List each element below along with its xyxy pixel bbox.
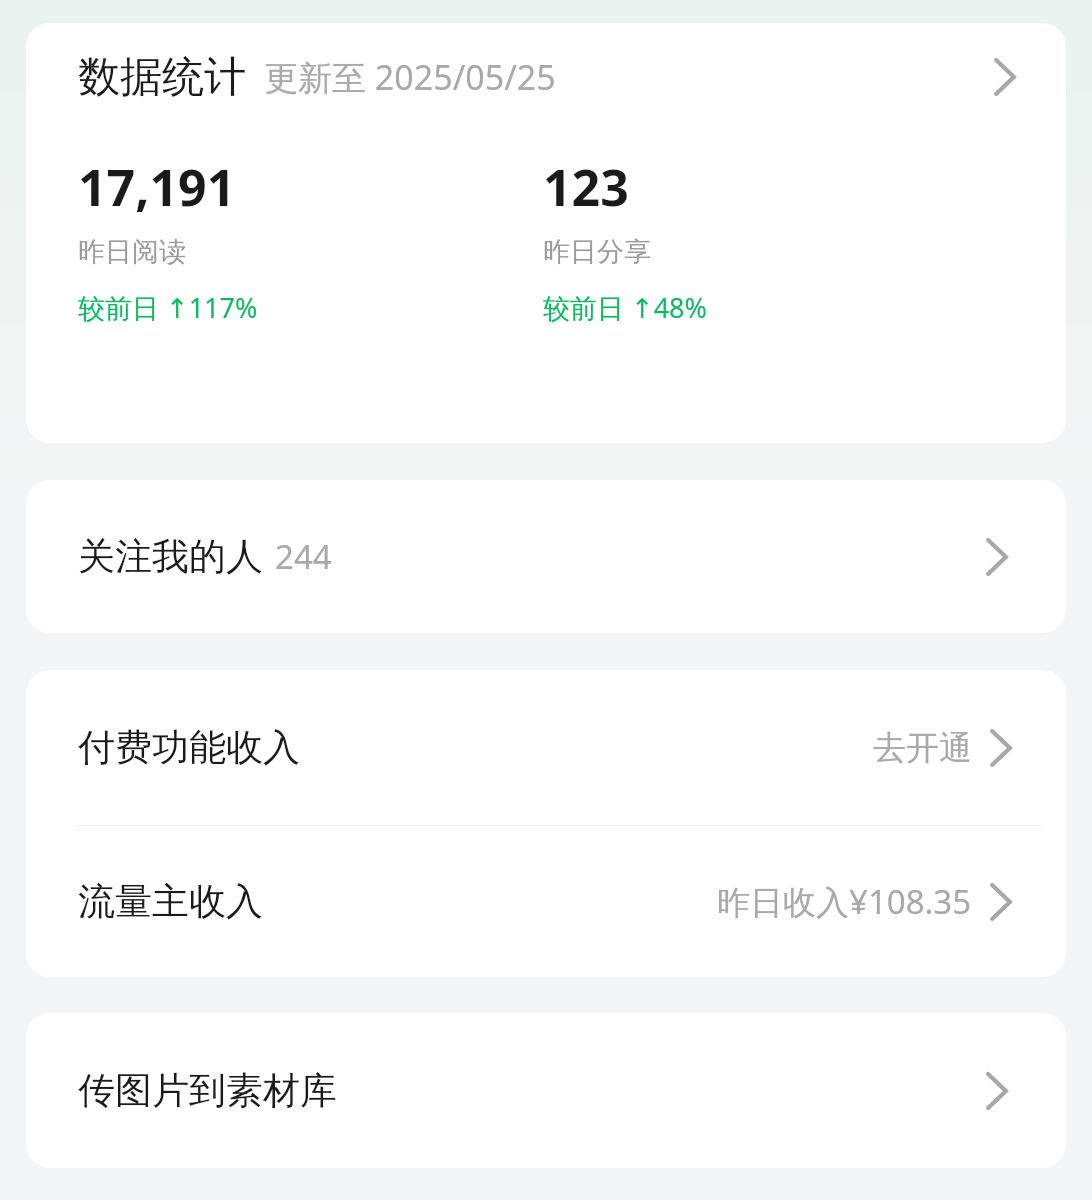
- staticText: 关注我的人: [78, 533, 263, 580]
- button[interactable]: 关注我的人: [26, 480, 1066, 633]
- staticText: 昨日收入¥108.35: [717, 879, 972, 924]
- staticText: 传图片到素材库: [78, 1067, 337, 1114]
- staticText: 昨日阅读: [78, 235, 186, 269]
- staticText: 较前日 ↑48%: [543, 289, 707, 326]
- staticText: 去开通: [873, 727, 972, 769]
- staticText: 123: [543, 153, 629, 221]
- staticText: 流量主收入: [78, 878, 263, 925]
- staticText: 17,191: [78, 153, 236, 221]
- staticText: 昨日分享: [543, 235, 651, 269]
- staticText: 数据统计: [78, 51, 246, 104]
- staticText: 更新至 2025/05/25: [264, 54, 556, 100]
- button[interactable]: 付费功能收入: [26, 670, 1066, 825]
- button[interactable]: 传图片到素材库: [26, 1013, 1066, 1168]
- staticText: 244: [275, 534, 332, 579]
- button[interactable]: 流量主收入: [26, 826, 1066, 977]
- staticText: 付费功能收入: [78, 724, 300, 771]
- staticText: 较前日 ↑117%: [78, 289, 258, 326]
- button[interactable]: 数据统计: [26, 23, 1066, 131]
